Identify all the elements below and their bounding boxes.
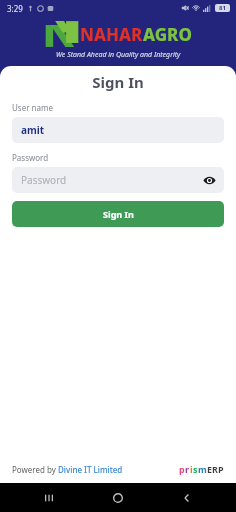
button[interactable]: Recent apps	[29, 483, 69, 512]
staticText: m	[198, 463, 207, 475]
button[interactable]: Home	[98, 483, 138, 512]
staticText: AGRO	[143, 23, 192, 46]
button[interactable]: Back	[167, 483, 207, 512]
staticText: NAHAR	[80, 23, 143, 46]
staticText: i	[190, 463, 193, 475]
staticText: s	[193, 463, 198, 475]
staticText: Password	[12, 152, 49, 163]
button[interactable]: amit	[12, 117, 224, 143]
staticText: Powered by	[12, 464, 58, 475]
staticText: Password	[21, 173, 67, 187]
staticText: 3:29	[7, 3, 23, 14]
staticText: Sign In	[0, 72, 236, 92]
button[interactable]: Show password	[201, 172, 217, 188]
staticText: r	[185, 463, 190, 475]
staticText: p	[179, 463, 185, 475]
button[interactable]: Password	[12, 167, 224, 193]
staticText: amit	[21, 123, 45, 137]
staticText: We Stand Ahead in Quality and Integrity	[56, 50, 181, 60]
staticText: Sign In	[103, 208, 134, 220]
staticText: 81	[219, 4, 226, 12]
button[interactable]: Divine IT Limited	[58, 464, 123, 475]
staticText: ERP	[207, 463, 224, 475]
button[interactable]: Sign In	[12, 201, 224, 227]
staticText: User name	[12, 102, 53, 113]
